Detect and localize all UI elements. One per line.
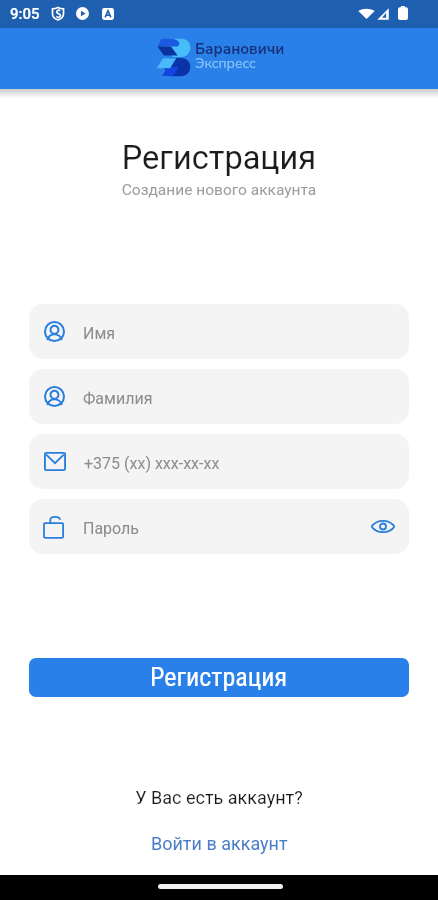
staticText: 9:05 — [10, 5, 40, 23]
staticText: +375 (xx) xxx-xx-xx — [84, 454, 220, 473]
staticText: Барановичи — [195, 39, 285, 59]
staticText: Фамилия — [83, 389, 153, 408]
button[interactable]: Пароль — [29, 499, 409, 554]
staticText: Регистрация — [0, 139, 438, 177]
button[interactable]: Фамилия — [29, 369, 409, 424]
button[interactable]: Показать пароль — [371, 519, 395, 534]
staticText: Войти в аккаунт — [151, 833, 288, 854]
staticText: Пароль — [83, 519, 140, 538]
staticText: Экспресс — [195, 54, 256, 73]
staticText: Регистрация — [150, 662, 288, 692]
staticText: У Вас есть аккаунт? — [0, 787, 438, 808]
button[interactable]: +375 (xx) xxx-xx-xx — [29, 434, 409, 489]
staticText: Создание нового аккаунта — [0, 181, 438, 199]
button[interactable]: Имя — [29, 304, 409, 359]
button[interactable]: Регистрация — [29, 658, 409, 697]
button[interactable]: Войти в аккаунт — [145, 831, 294, 856]
staticText: Имя — [83, 324, 116, 343]
